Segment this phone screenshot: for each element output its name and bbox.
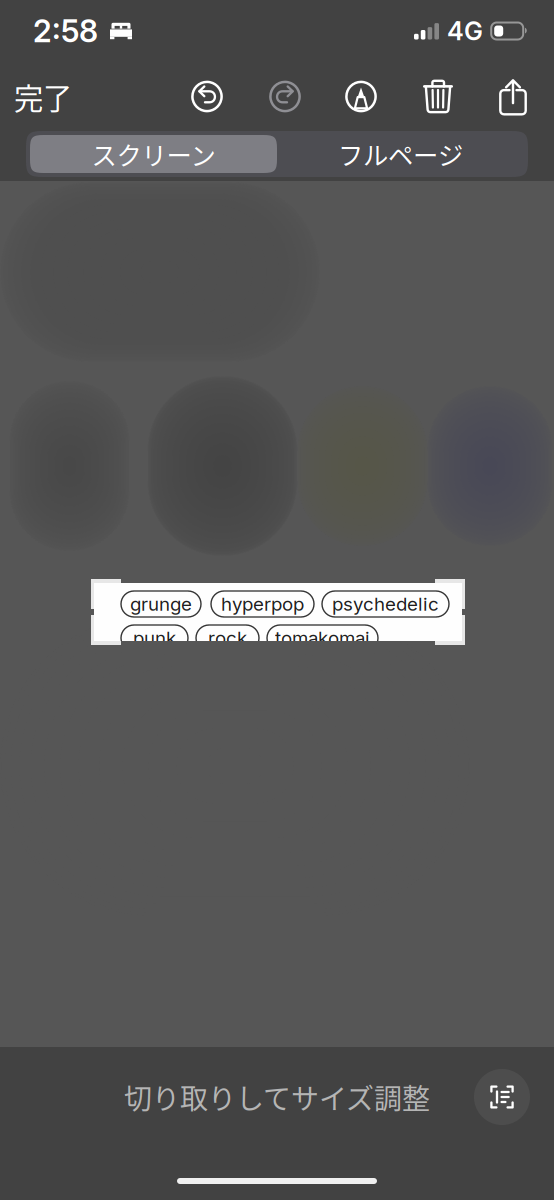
staticText: grunge [130,593,192,615]
staticText: 切り取りしてサイズ調整 [124,1077,430,1117]
staticText: 完了 [14,75,72,118]
staticText: スクリーン [91,136,215,172]
button[interactable]: Undo [185,62,228,131]
staticText: psychedelic [332,593,439,615]
button[interactable]: Markup [339,62,382,131]
button[interactable]: 完了 [0,62,86,131]
staticText: 2:58 [33,12,98,49]
staticText: punk [133,627,176,649]
button[interactable]: Redo [263,62,306,131]
button[interactable]: Delete [416,62,459,131]
button[interactable]: スクリーン [30,135,277,173]
staticText: rock [208,627,247,649]
button[interactable]: Live Text [474,1069,530,1125]
staticText: フルページ [338,136,463,172]
staticText: tomakomai [275,627,370,649]
button[interactable]: フルページ [277,135,524,173]
staticText: 4G [447,16,483,46]
button[interactable]: Share [491,62,534,131]
staticText: hyperpop [221,593,304,615]
